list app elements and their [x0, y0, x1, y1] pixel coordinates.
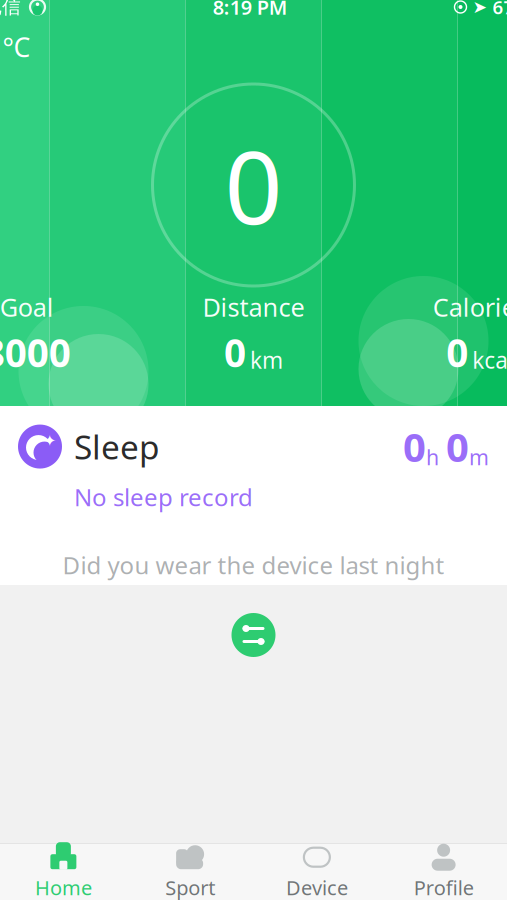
staticText: ➤ — [472, 0, 487, 17]
staticText: 0 — [224, 118, 282, 252]
staticText: 中国电信 — [0, 0, 21, 18]
button[interactable]: ✦ — [0, 406, 507, 585]
staticText: 0 — [224, 327, 246, 378]
staticText: Sleep — [74, 424, 160, 469]
staticText: Calories — [433, 290, 507, 324]
staticText: kcal — [472, 345, 507, 375]
staticText: km — [250, 345, 283, 375]
button[interactable]: Sport — [127, 844, 254, 900]
staticText: Goal — [0, 290, 54, 324]
button[interactable]: Profile — [380, 844, 507, 900]
staticText: 0 — [403, 420, 426, 473]
staticText: m — [469, 443, 489, 471]
staticText: Profile — [414, 874, 474, 900]
staticText: Device — [286, 874, 348, 900]
staticText: Distance — [202, 290, 304, 324]
staticText: 8:19 PM — [213, 0, 288, 20]
staticText: 8000 — [0, 327, 71, 378]
staticText: 0 — [446, 327, 468, 378]
staticText: 0 — [446, 420, 469, 473]
button[interactable]: Adjust goal — [226, 608, 280, 662]
button[interactable]: Home — [0, 844, 127, 900]
staticText: Did you wear the device last night — [62, 549, 444, 581]
staticText: ✦ — [43, 432, 56, 450]
staticText: Sport — [165, 874, 215, 900]
staticText: 26 °C — [0, 29, 30, 65]
staticText: h — [426, 443, 439, 471]
staticText: No sleep record — [74, 481, 253, 513]
staticText: Home — [35, 874, 92, 900]
button[interactable]: Device — [253, 844, 380, 900]
staticText: 67% — [492, 0, 507, 19]
